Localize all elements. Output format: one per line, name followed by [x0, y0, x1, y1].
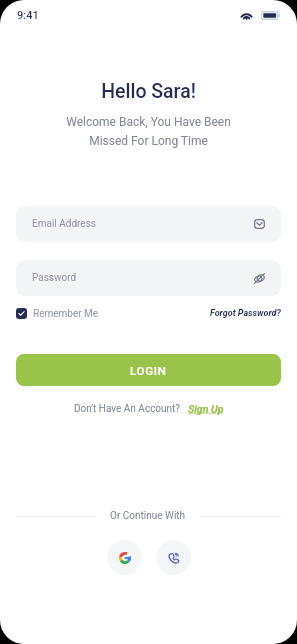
- button[interactable]: Sign in with phone: [156, 540, 191, 575]
- button[interactable]: Email Address: [16, 206, 281, 242]
- button[interactable]: Password: [16, 260, 281, 296]
- button[interactable]: Forgot Password?: [210, 308, 281, 319]
- staticText: Remember Me: [33, 308, 99, 320]
- staticText: Or Continue With: [110, 510, 186, 522]
- staticText: 9:41: [17, 9, 39, 22]
- staticText: Hello Sara!: [0, 80, 297, 103]
- staticText: Email Address: [32, 218, 96, 230]
- button[interactable]: Remember Me: [16, 306, 99, 321]
- staticText: LOGIN: [130, 364, 167, 377]
- button[interactable]: LOGIN: [16, 354, 281, 386]
- button[interactable]: Sign Up: [188, 403, 224, 415]
- button[interactable]: Sign in with Google: [107, 540, 142, 575]
- staticText: Password: [32, 272, 77, 284]
- staticText: Welcome Back, You Have Been Missed For L…: [0, 115, 297, 148]
- staticText: Don't Have An Account?: [74, 403, 181, 415]
